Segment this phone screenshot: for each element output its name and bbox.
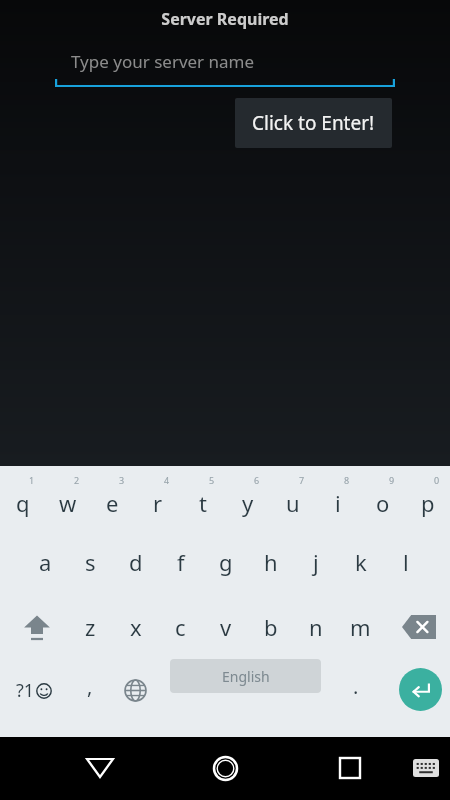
button[interactable]: English xyxy=(170,659,321,693)
staticText: 5 xyxy=(209,474,215,486)
button[interactable]: d xyxy=(113,529,158,594)
staticText: n xyxy=(309,612,323,642)
staticText: y xyxy=(242,488,254,518)
staticText: c xyxy=(175,612,186,642)
button[interactable]: Back xyxy=(70,745,130,791)
button[interactable]: . xyxy=(335,659,377,721)
staticText: Server Required xyxy=(0,8,450,30)
staticText: Click to Enter! xyxy=(252,110,375,136)
button[interactable]: 4 xyxy=(135,466,180,529)
button[interactable]: m xyxy=(338,594,383,659)
staticText: English xyxy=(222,667,270,686)
button[interactable]: f xyxy=(158,529,203,594)
button[interactable]: x xyxy=(113,594,158,659)
button[interactable]: 1 xyxy=(0,466,45,529)
button[interactable]: Click to Enter! xyxy=(235,98,392,148)
button[interactable]: 8 xyxy=(315,466,360,529)
button[interactable]: Symbols and emoji xyxy=(6,659,62,721)
staticText: 9 xyxy=(389,474,395,486)
staticText: 7 xyxy=(299,474,305,486)
staticText: ?1 xyxy=(16,678,35,703)
button[interactable]: Enter xyxy=(389,658,450,721)
button[interactable]: l xyxy=(383,529,428,594)
staticText: i xyxy=(335,488,341,518)
button[interactable]: 5 xyxy=(180,466,225,529)
staticText: f xyxy=(177,547,185,577)
staticText: p xyxy=(421,488,435,518)
staticText: t xyxy=(199,488,207,518)
button[interactable]: v xyxy=(203,594,248,659)
staticText: 8 xyxy=(344,474,350,486)
button[interactable]: 3 xyxy=(90,466,135,529)
button[interactable]: 7 xyxy=(270,466,315,529)
button[interactable]: 6 xyxy=(225,466,270,529)
button[interactable]: Change language xyxy=(113,659,157,721)
staticText: r xyxy=(153,488,163,518)
button[interactable]: 0 xyxy=(405,466,450,529)
button[interactable]: z xyxy=(68,594,113,659)
staticText: u xyxy=(286,488,300,518)
staticText: Type your server name xyxy=(71,50,255,73)
button[interactable]: Switch keyboard xyxy=(402,745,450,791)
staticText: m xyxy=(350,612,371,642)
staticText: s xyxy=(85,547,96,577)
button[interactable]: g xyxy=(203,529,248,594)
staticText: . xyxy=(353,673,359,700)
staticText: 3 xyxy=(119,474,125,486)
staticText: l xyxy=(403,547,409,577)
staticText: h xyxy=(264,547,278,577)
staticText: d xyxy=(129,547,143,577)
staticText: o xyxy=(376,488,390,518)
button[interactable]: 2 xyxy=(45,466,90,529)
button[interactable]: Shift xyxy=(8,594,66,659)
button[interactable]: Type your server name xyxy=(55,46,395,90)
button[interactable]: Backspace xyxy=(390,594,448,659)
button[interactable]: n xyxy=(293,594,338,659)
button[interactable]: b xyxy=(248,594,293,659)
staticText: b xyxy=(264,612,278,642)
staticText: w xyxy=(59,488,77,518)
button[interactable]: a xyxy=(23,529,68,594)
staticText: 6 xyxy=(254,474,260,486)
button[interactable]: Home xyxy=(195,745,255,791)
staticText: 2 xyxy=(74,474,80,486)
staticText: 4 xyxy=(164,474,170,486)
staticText: z xyxy=(85,612,96,642)
button[interactable]: c xyxy=(158,594,203,659)
staticText: 1 xyxy=(29,474,35,486)
staticText: e xyxy=(106,488,119,518)
staticText: g xyxy=(219,547,233,577)
staticText: j xyxy=(313,547,319,577)
button[interactable]: Recent apps xyxy=(320,745,380,791)
button[interactable]: k xyxy=(338,529,383,594)
button[interactable]: , xyxy=(68,659,112,721)
staticText: k xyxy=(355,547,367,577)
button[interactable]: s xyxy=(68,529,113,594)
staticText: , xyxy=(87,673,93,700)
staticText: a xyxy=(39,547,52,577)
staticText: 0 xyxy=(434,474,440,486)
button[interactable]: h xyxy=(248,529,293,594)
staticText: v xyxy=(220,612,232,642)
staticText: x xyxy=(130,612,142,642)
button[interactable]: 9 xyxy=(360,466,405,529)
staticText: q xyxy=(16,488,30,518)
button[interactable]: j xyxy=(293,529,338,594)
